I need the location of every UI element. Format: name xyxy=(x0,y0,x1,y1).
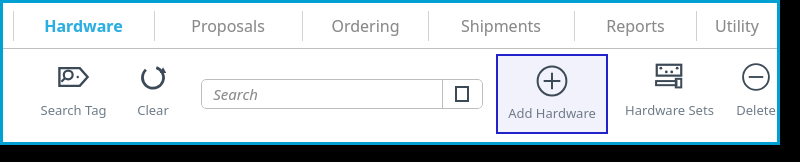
button[interactable]: Ordering xyxy=(303,3,427,48)
button[interactable]: Clear xyxy=(121,57,185,129)
staticText: Reports xyxy=(606,15,665,37)
staticText: Hardware Sets xyxy=(625,101,714,119)
button[interactable]: Hardware xyxy=(13,3,153,48)
staticText: Shipments xyxy=(461,15,541,37)
staticText: Clear xyxy=(137,101,169,119)
button[interactable]: Shipments xyxy=(429,3,573,48)
staticText: Search xyxy=(213,84,258,104)
staticText: Utility xyxy=(715,15,759,37)
staticText: Ordering xyxy=(331,15,400,37)
staticText: Delete xyxy=(736,101,776,119)
staticText: Hardware xyxy=(44,15,123,37)
button[interactable]: Delete xyxy=(727,57,785,129)
button[interactable]: Add Hardware xyxy=(496,54,608,134)
other: Scan xyxy=(455,86,469,102)
button[interactable]: Proposals xyxy=(155,3,301,48)
staticText: Search Tag xyxy=(40,101,107,119)
button[interactable]: Search xyxy=(201,79,483,109)
button[interactable]: Search Tag xyxy=(25,57,121,129)
button[interactable]: Hardware Sets xyxy=(611,57,727,129)
button[interactable]: Utility xyxy=(697,3,777,48)
button[interactable]: Reports xyxy=(575,3,695,48)
staticText: Proposals xyxy=(191,15,265,37)
staticText: Add Hardware xyxy=(508,104,596,122)
